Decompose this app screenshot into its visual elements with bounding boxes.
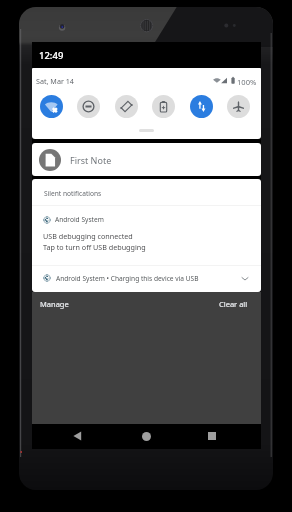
staticText: 12:49: [39, 49, 64, 62]
button[interactable]: Recent apps: [200, 424, 224, 448]
staticText: Android System: [55, 215, 104, 224]
staticText: Tap to turn off USB debugging: [43, 242, 146, 252]
button[interactable]: Back: [66, 424, 90, 448]
button[interactable]: Home: [134, 424, 158, 448]
button[interactable]: Do Not Disturb: [77, 95, 100, 118]
button[interactable]: Battery Saver: [152, 95, 175, 118]
button[interactable]: Android System • Charging this device vi…: [32, 266, 261, 291]
staticText: 100%: [237, 77, 257, 87]
button[interactable]: Mobile data: [190, 95, 213, 118]
button[interactable]: Clear all: [219, 299, 248, 309]
button[interactable]: Airplane mode: [227, 95, 250, 118]
button[interactable]: First Note: [32, 143, 261, 176]
staticText: Android System • Charging this device vi…: [56, 274, 199, 283]
staticText: Sat, Mar 14: [36, 76, 74, 86]
button[interactable]: Wi-Fi off: [40, 95, 63, 118]
button[interactable]: Android System: [32, 206, 261, 266]
staticText: First Note: [70, 154, 112, 166]
staticText: Silent notifications: [44, 189, 102, 198]
staticText: Clear all: [219, 299, 248, 309]
staticText: USB debugging connected: [43, 231, 133, 241]
button[interactable]: Manage: [40, 299, 69, 309]
staticText: Manage: [40, 299, 69, 309]
button[interactable]: Auto-rotate: [115, 95, 138, 118]
